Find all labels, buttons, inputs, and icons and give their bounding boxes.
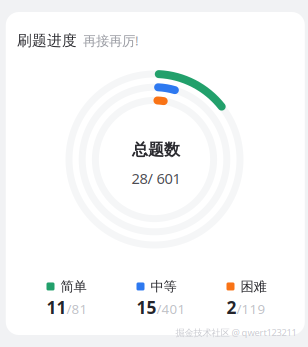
staticText: 困难 bbox=[240, 278, 266, 295]
button[interactable]: 困难 bbox=[226, 278, 286, 319]
staticText: 2 bbox=[226, 296, 236, 319]
staticText: /401 bbox=[156, 300, 185, 318]
button[interactable]: 中等 bbox=[136, 278, 196, 319]
staticText: /119 bbox=[236, 300, 265, 318]
staticText: 简单 bbox=[60, 278, 86, 295]
staticText: 总题数 bbox=[132, 140, 180, 160]
staticText: 掘金技术社区 @ qwert123211 bbox=[175, 326, 296, 339]
staticText: 15 bbox=[136, 296, 156, 319]
button[interactable]: 简单 bbox=[46, 278, 106, 319]
staticText: 中等 bbox=[150, 278, 176, 295]
staticText: 11 bbox=[46, 296, 66, 319]
staticText: 刷题进度 bbox=[17, 31, 77, 49]
staticText: 再接再厉! bbox=[83, 31, 139, 49]
staticText: /81 bbox=[66, 300, 87, 318]
staticText: 28/ 601 bbox=[131, 169, 180, 188]
